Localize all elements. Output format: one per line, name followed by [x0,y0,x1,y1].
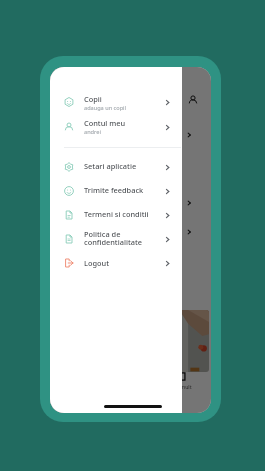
button[interactable]: Copii [50,91,182,113]
staticText: andrei [84,128,101,136]
staticText: Contul meu [84,118,126,128]
staticText: Logout [84,258,110,268]
staticText: Setari aplicatie [84,161,137,171]
staticText: adauga un copil [84,104,126,112]
button[interactable]: Mai mult [169,372,193,390]
staticText: Mai mult [170,383,192,390]
staticText: Trimite feedback [84,185,144,195]
button[interactable]: Politica de confidentialitate [50,228,182,250]
button[interactable]: Contul meu [50,116,182,138]
button[interactable]: Setari aplicatie [50,156,182,178]
staticText: Termeni si conditii [84,209,149,219]
staticText: Copii [84,94,102,104]
button[interactable]: Termeni si conditii [50,204,182,226]
staticText: Politica de confidentialitate [84,229,143,247]
button[interactable]: Profile [188,95,198,105]
button[interactable]: Logout [50,252,182,274]
button[interactable]: Trimite feedback [50,180,182,202]
